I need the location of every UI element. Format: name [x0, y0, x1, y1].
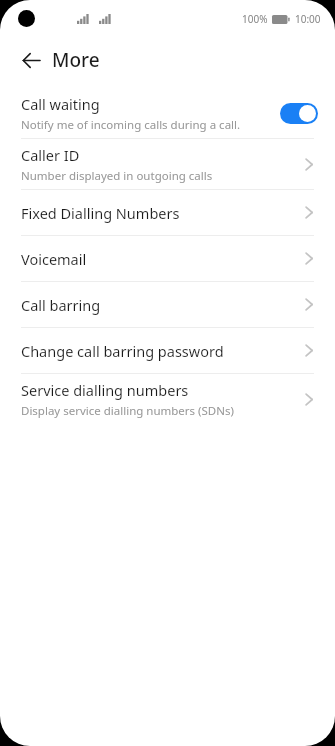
- staticText: Change call barring password: [21, 341, 224, 361]
- button[interactable]: Call waiting: [0, 88, 335, 138]
- button[interactable]: Service dialling numbers: [0, 374, 335, 424]
- button[interactable]: Call waiting toggle: [280, 103, 318, 124]
- button[interactable]: Fixed Dialling Numbers: [0, 190, 335, 235]
- staticText: More: [52, 47, 100, 73]
- staticText: Display service dialling numbers (SDNs): [21, 403, 234, 419]
- staticText: Voicemail: [21, 249, 87, 269]
- button[interactable]: Call barring: [0, 282, 335, 327]
- staticText: Call waiting: [21, 94, 100, 114]
- staticText: Number displayed in outgoing calls: [21, 168, 213, 184]
- button[interactable]: Caller ID: [0, 139, 335, 189]
- staticText: Service dialling numbers: [21, 380, 189, 400]
- staticText: Notify me of incoming calls during a cal…: [21, 117, 241, 133]
- button[interactable]: Voicemail: [0, 236, 335, 281]
- staticText: 100%: [242, 12, 268, 26]
- staticText: 10:00: [295, 12, 321, 26]
- staticText: Caller ID: [21, 145, 80, 165]
- button[interactable]: Change call barring password: [0, 328, 335, 373]
- button[interactable]: Back: [14, 43, 48, 77]
- staticText: Call barring: [21, 295, 101, 315]
- staticText: Fixed Dialling Numbers: [21, 203, 180, 223]
